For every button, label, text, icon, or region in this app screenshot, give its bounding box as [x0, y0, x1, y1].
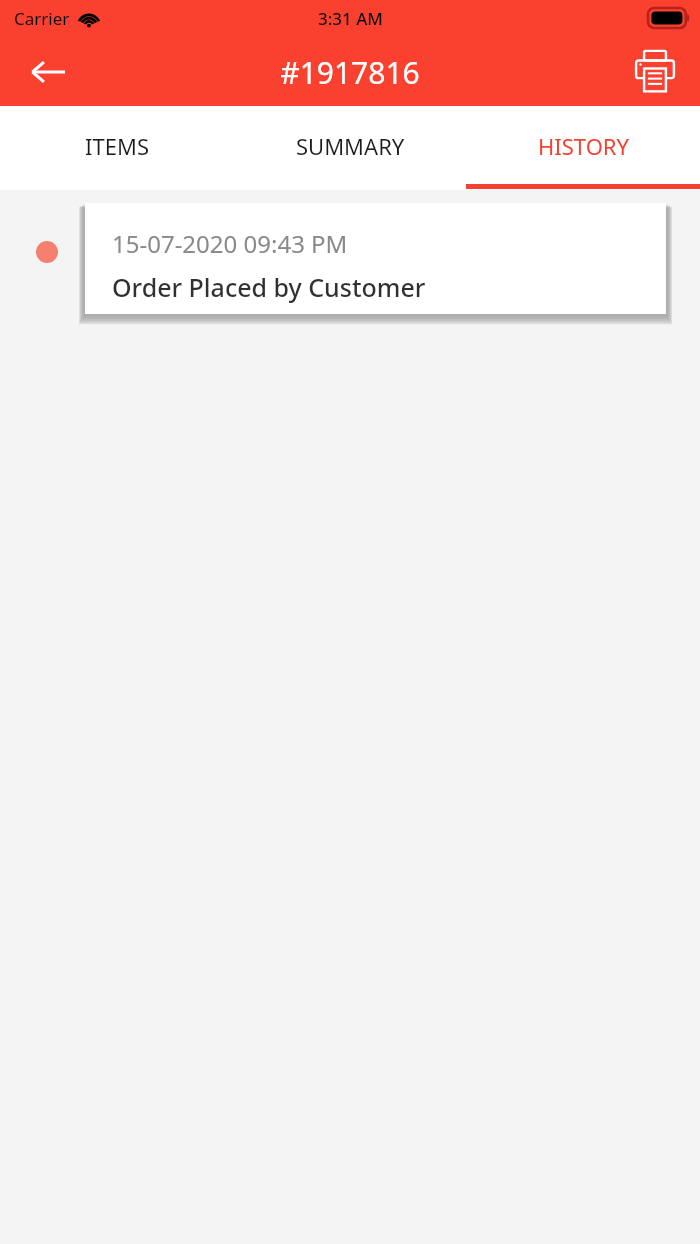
staticText: ITEMS — [85, 131, 149, 161]
staticText: 15-07-2020 09:43 PM — [112, 227, 348, 260]
staticText: Order Placed by Customer — [112, 270, 426, 304]
staticText: #1917816 — [0, 52, 700, 93]
button[interactable]: HISTORY — [467, 106, 700, 185]
button[interactable]: ITEMS — [0, 106, 234, 185]
button[interactable]: Back — [18, 44, 78, 100]
staticText: SUMMARY — [296, 131, 405, 161]
staticText: Carrier — [14, 7, 70, 30]
button[interactable]: SUMMARY — [234, 106, 467, 185]
button[interactable]: 15-07-2020 09:43 PM — [85, 203, 666, 314]
staticText: HISTORY — [538, 131, 629, 161]
staticText: 3:31 AM — [318, 7, 383, 30]
button[interactable]: Print — [624, 42, 686, 102]
